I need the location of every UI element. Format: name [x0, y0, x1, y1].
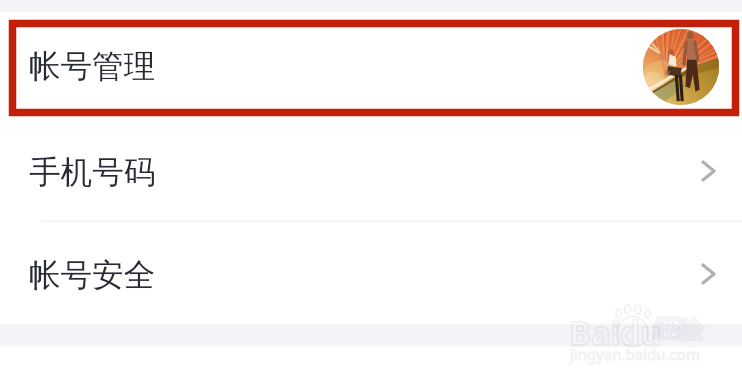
- other: Profile picture: [643, 29, 719, 105]
- button[interactable]: 帐号管理: [0, 19, 742, 115]
- staticText: 手机号码: [29, 153, 156, 193]
- staticText: 帐号管理: [29, 47, 156, 87]
- staticText: 帐号安全: [29, 256, 156, 296]
- other: Open: [701, 261, 717, 287]
- staticText: 经验: [653, 314, 703, 345]
- other: Open: [701, 158, 717, 184]
- button[interactable]: 手机号码: [0, 122, 742, 224]
- staticText: du: [620, 311, 662, 355]
- staticText: jingyan.baidu.com: [570, 344, 700, 364]
- staticText: Bai: [569, 310, 621, 355]
- button[interactable]: 帐号安全: [0, 225, 742, 327]
